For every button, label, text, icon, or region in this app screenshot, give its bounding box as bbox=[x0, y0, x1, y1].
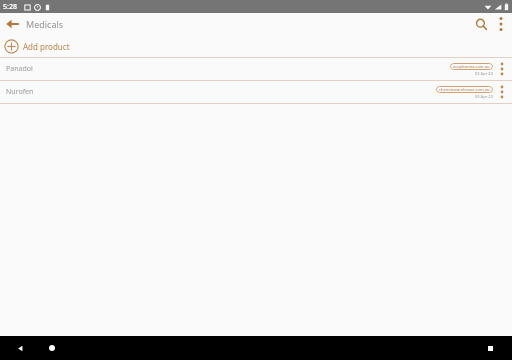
button[interactable]: Add product bbox=[0, 35, 512, 57]
staticText: Nurofen bbox=[6, 87, 34, 97]
button[interactable]: Item options for Panadol bbox=[493, 58, 511, 80]
staticText: chemistwarehouse.com.au bbox=[439, 87, 490, 92]
button[interactable]: Search bbox=[470, 13, 492, 35]
button[interactable]: Recent apps bbox=[480, 338, 500, 358]
button[interactable]: Panadol bbox=[0, 58, 512, 80]
staticText: Medicals bbox=[26, 18, 64, 30]
staticText: 03 Apr 23 bbox=[475, 94, 493, 99]
button[interactable]: Nurofen bbox=[0, 81, 512, 103]
button[interactable]: More options bbox=[492, 13, 510, 35]
button[interactable]: Back bbox=[10, 338, 30, 358]
staticText: 5:28 bbox=[3, 2, 17, 12]
staticText: ecopharma.com.au bbox=[453, 64, 490, 69]
staticText: Panadol bbox=[6, 64, 33, 74]
button[interactable]: Back bbox=[0, 13, 26, 35]
staticText: Add product bbox=[23, 41, 70, 52]
button[interactable]: Item options for Nurofen bbox=[493, 81, 511, 103]
staticText: 03 Apr 23 bbox=[475, 71, 493, 76]
button[interactable]: Home bbox=[42, 338, 62, 358]
